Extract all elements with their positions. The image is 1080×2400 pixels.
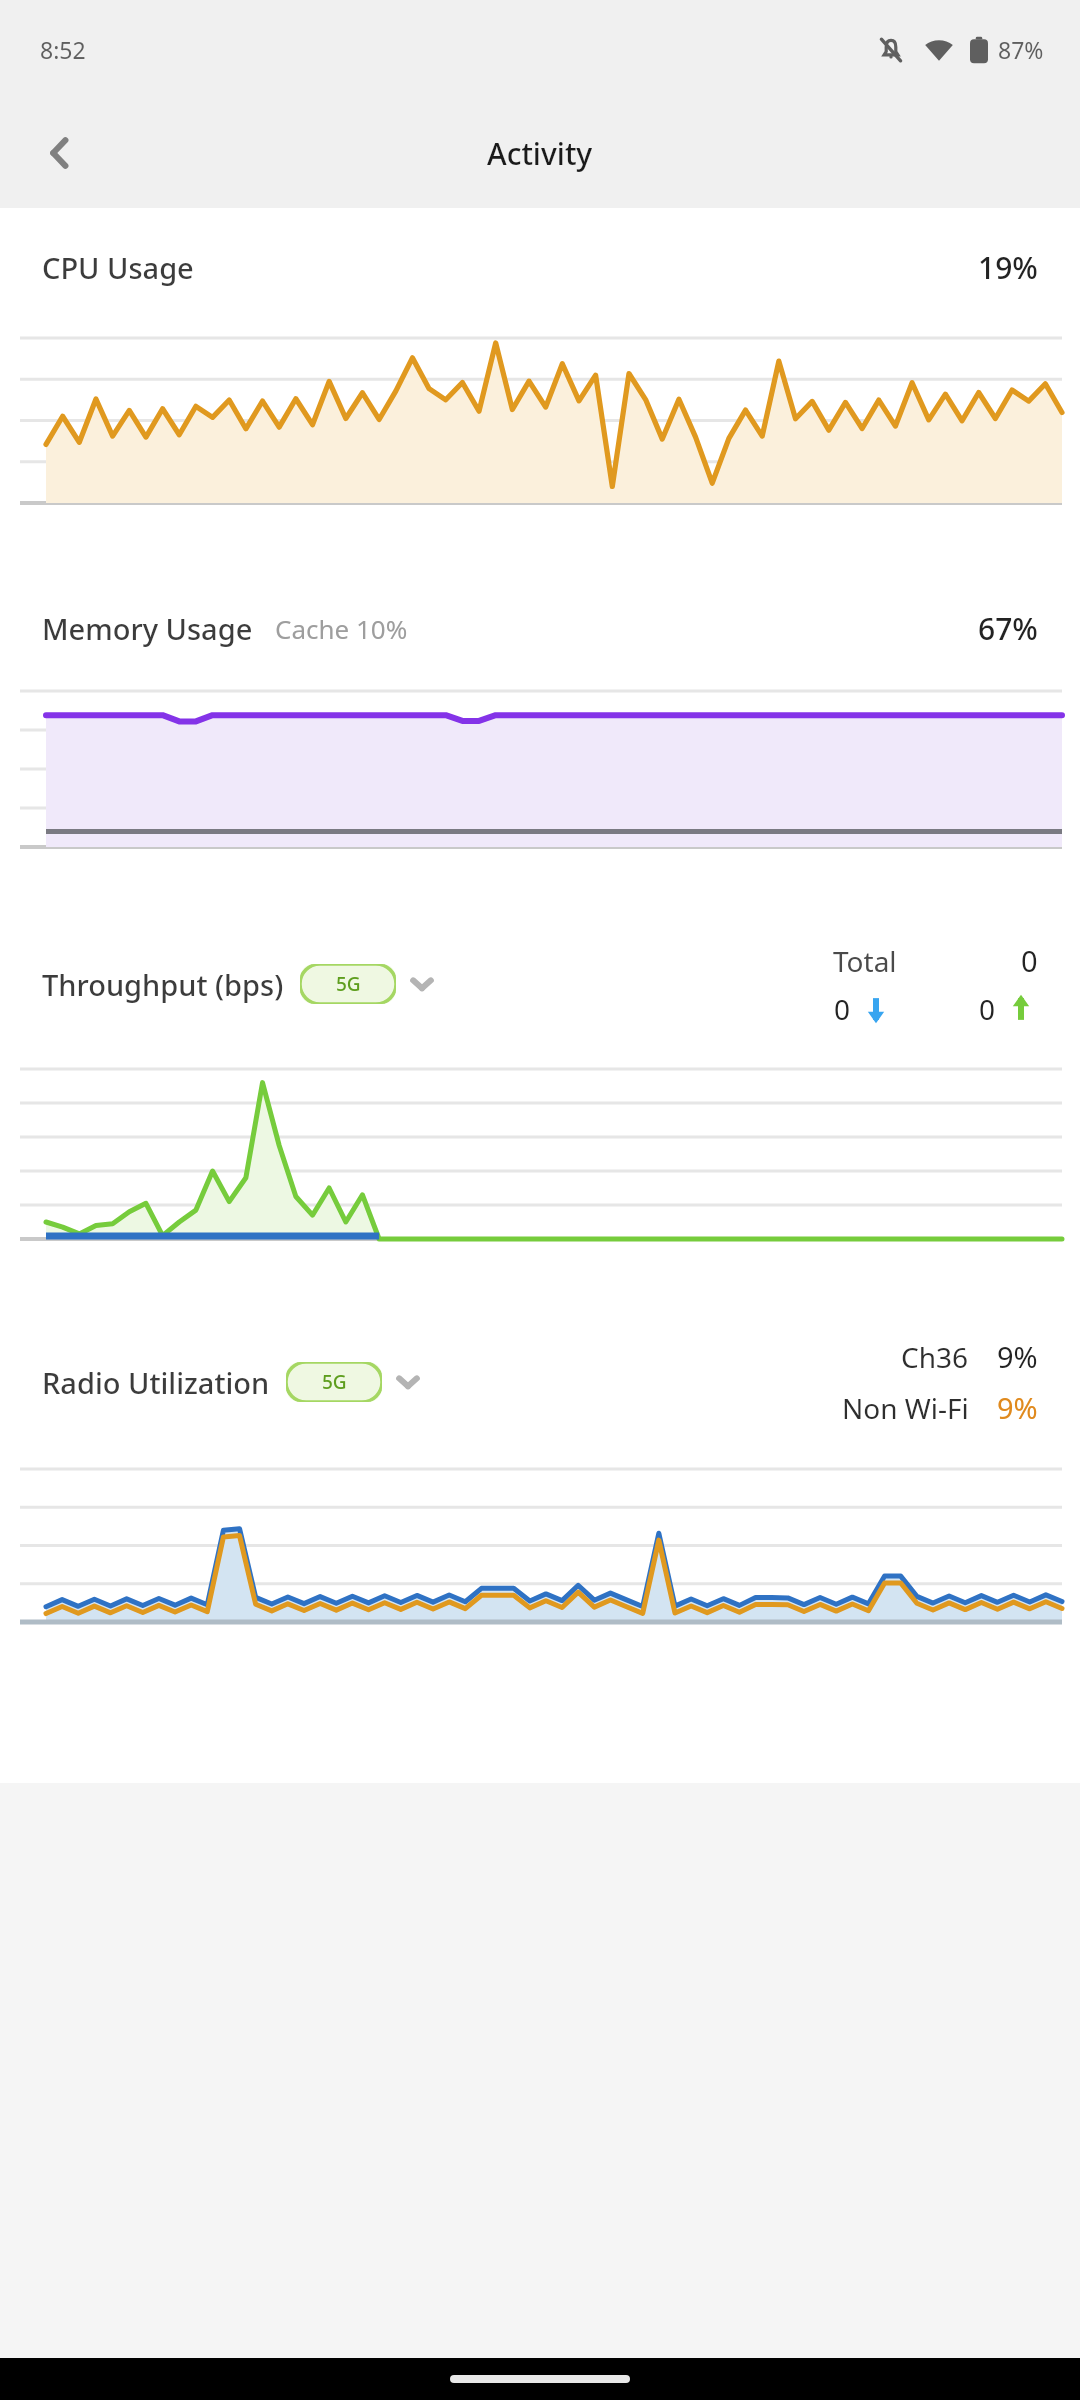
button[interactable]: Memory Usage [0, 573, 1080, 683]
staticText: Total [833, 942, 897, 980]
staticText: Cache 10% [275, 611, 408, 646]
button[interactable]: CPU Usage [0, 208, 1080, 326]
button[interactable]: Throughput (bps) [0, 909, 1080, 1059]
staticText: Throughput (bps) [42, 965, 284, 1004]
staticText: 0 [834, 990, 851, 1028]
staticText: 0 [979, 990, 996, 1028]
staticText: Activity [487, 133, 593, 174]
staticText: Ch36 [901, 1338, 969, 1376]
button[interactable]: Radio Utilization [0, 1307, 1080, 1457]
staticText: 19% [978, 247, 1038, 288]
staticText: Non Wi-Fi [842, 1389, 969, 1427]
button[interactable]: Back [22, 115, 98, 191]
staticText: 67% [978, 608, 1038, 649]
button[interactable]: Expand band selector [400, 962, 444, 1006]
staticText: Memory Usage [42, 609, 253, 648]
staticText: 87% [998, 34, 1044, 65]
button[interactable]: 5G [286, 1362, 382, 1402]
staticText: 9% [997, 1388, 1038, 1427]
button[interactable]: Expand band selector [386, 1360, 430, 1404]
staticText: 5G [322, 1369, 347, 1395]
staticText: 0 [1021, 941, 1038, 980]
button[interactable]: 5G [300, 964, 396, 1004]
staticText: 5G [336, 971, 361, 997]
staticText: CPU Usage [42, 248, 194, 287]
staticText: Radio Utilization [42, 1363, 270, 1402]
staticText: 8:52 [40, 34, 86, 65]
staticText: 9% [997, 1337, 1038, 1376]
